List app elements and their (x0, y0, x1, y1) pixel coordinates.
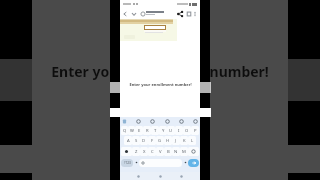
staticText: P (194, 128, 197, 134)
button[interactable]: H (164, 136, 172, 145)
button[interactable]: Y (159, 126, 167, 135)
staticText: ?123 (124, 161, 131, 165)
staticText: J (175, 138, 177, 144)
staticText: Q (123, 128, 127, 134)
button[interactable]: GIF (149, 118, 156, 125)
staticText: Enter your enrollment number! (129, 82, 192, 87)
button[interactable]: Back (136, 174, 141, 179)
button[interactable]: Share (176, 10, 184, 18)
button[interactable]: Clipboard (121, 118, 128, 125)
staticText: Enter your enrollment number! (51, 62, 269, 81)
button[interactable]: Shift (121, 147, 132, 156)
button[interactable]: S (132, 136, 140, 145)
button[interactable]: F (148, 136, 156, 145)
button[interactable]: Home (158, 174, 163, 179)
button[interactable]: G (156, 136, 164, 145)
button[interactable]: Settings (164, 118, 171, 125)
staticText: N (174, 149, 178, 155)
button[interactable]: D (140, 136, 148, 145)
button[interactable]: ?123 (121, 159, 133, 167)
button[interactable]: O (183, 126, 191, 135)
staticText: L (191, 138, 194, 144)
button[interactable]: J (172, 136, 180, 145)
staticText: F (151, 138, 154, 144)
button[interactable]: Tabs (185, 10, 193, 18)
button[interactable]: B (164, 147, 172, 156)
staticText: W (130, 128, 134, 134)
button[interactable]: A (124, 136, 132, 145)
staticText: T (154, 128, 157, 134)
button[interactable]: T (151, 126, 159, 135)
button[interactable]: Comma (133, 158, 139, 167)
staticText: E (138, 128, 141, 134)
staticText: S (135, 138, 138, 144)
button[interactable]: Period (182, 158, 188, 167)
button[interactable]: U (167, 126, 175, 135)
staticText: V (159, 149, 162, 155)
button[interactable]: Q (121, 126, 128, 135)
staticText: O (185, 128, 189, 134)
button[interactable]: More options (191, 10, 199, 18)
button[interactable]: Reload (139, 10, 147, 18)
button[interactable]: Recents (179, 174, 184, 179)
button[interactable]: W (128, 126, 135, 135)
button[interactable]: Sticker (178, 118, 185, 125)
staticText: B (167, 149, 170, 155)
button[interactable]: Z (132, 147, 140, 156)
staticText: I (178, 128, 180, 134)
staticText: A (127, 138, 130, 144)
button[interactable]: E (135, 126, 143, 135)
staticText: C (151, 149, 154, 155)
button[interactable]: Back (121, 10, 129, 18)
staticText: X (143, 149, 146, 155)
button[interactable]: X (140, 147, 148, 156)
button[interactable]: I (175, 126, 183, 135)
button[interactable]: V (156, 147, 164, 156)
button[interactable]: M (180, 147, 188, 156)
staticText: D (142, 138, 146, 144)
button[interactable]: N (172, 147, 180, 156)
staticText: Y (162, 128, 165, 134)
button[interactable]: Backspace (188, 147, 199, 156)
staticText: R (146, 128, 149, 134)
staticText: M (182, 149, 186, 155)
staticText: K (183, 138, 186, 144)
staticText: Z (135, 149, 138, 155)
button[interactable]: Microphone (192, 118, 199, 125)
button[interactable]: Emoji (135, 118, 142, 125)
button[interactable]: Downloads (130, 10, 138, 18)
staticText: H (166, 138, 170, 144)
button[interactable]: R (143, 126, 151, 135)
staticText: G (158, 138, 162, 144)
button[interactable]: L (188, 136, 196, 145)
button[interactable]: Space (139, 159, 182, 167)
button[interactable]: K (180, 136, 188, 145)
staticText: U (169, 128, 173, 134)
button[interactable]: P (191, 126, 199, 135)
button[interactable]: Enter (188, 159, 199, 167)
button[interactable]: C (148, 147, 156, 156)
